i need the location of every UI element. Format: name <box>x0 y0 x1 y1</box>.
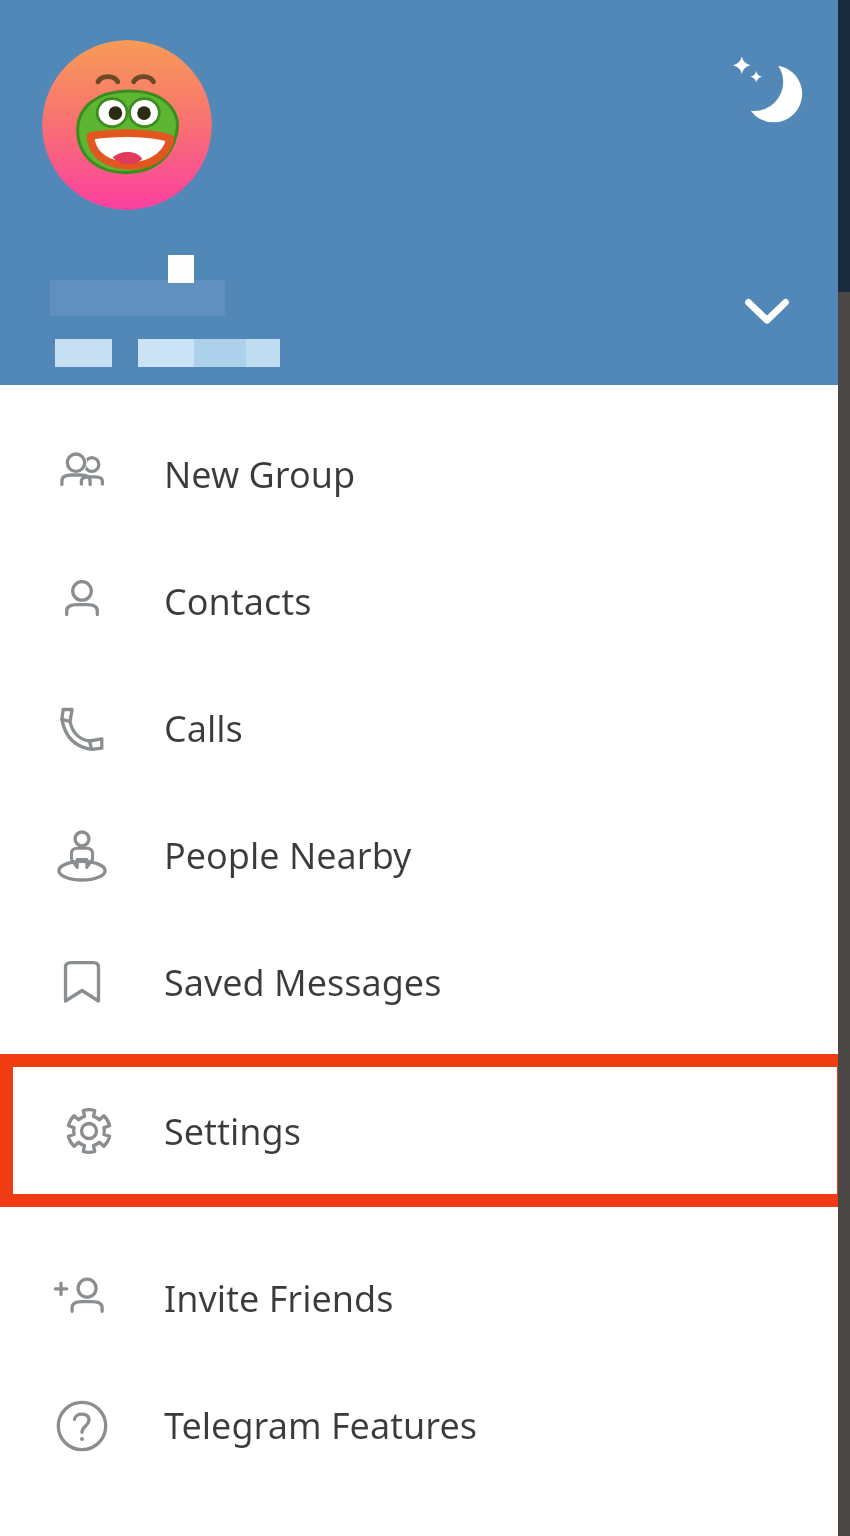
button[interactable]: Profile photo <box>42 40 212 210</box>
button[interactable]: Invite Friends <box>0 1235 850 1362</box>
other: New Group <box>52 445 112 505</box>
other: Invite Friends <box>52 1269 112 1329</box>
staticText: Contacts <box>164 577 312 626</box>
other: Calls <box>52 699 112 759</box>
staticText: Telegram Features <box>164 1401 478 1450</box>
staticText: New Group <box>164 450 356 499</box>
staticText: People Nearby <box>164 831 412 880</box>
staticText: Invite Friends <box>164 1274 394 1323</box>
staticText: Saved Messages <box>164 958 442 1007</box>
other: Contacts <box>52 572 112 632</box>
button[interactable]: New Group <box>0 411 850 538</box>
button[interactable]: People Nearby <box>0 792 850 919</box>
staticText: Calls <box>164 704 243 753</box>
staticText: Settings <box>164 1107 301 1156</box>
button[interactable]: Night mode <box>730 52 806 128</box>
button[interactable]: Contacts <box>0 538 850 665</box>
button[interactable]: Calls <box>0 665 850 792</box>
other: Saved Messages <box>52 953 112 1013</box>
other: People Nearby <box>52 826 112 886</box>
button[interactable]: Settings <box>13 1067 837 1194</box>
button[interactable]: Telegram Features <box>0 1362 850 1489</box>
other: Settings <box>59 1101 119 1161</box>
button[interactable]: Saved Messages <box>0 919 850 1046</box>
button[interactable]: Expand accounts <box>735 278 799 342</box>
other: Telegram Features <box>52 1396 112 1456</box>
